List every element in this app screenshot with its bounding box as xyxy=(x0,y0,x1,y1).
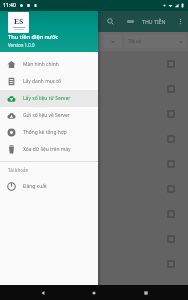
button[interactable]: Select row xyxy=(0,176,188,201)
other: Select row xyxy=(168,186,174,192)
button[interactable]: More options xyxy=(174,15,187,28)
button[interactable]: Search xyxy=(104,15,117,28)
button[interactable]: Gửi số liệu về Server xyxy=(0,107,98,124)
button[interactable]: Lấy danh mục tổ xyxy=(0,73,98,90)
button[interactable]: Filter xyxy=(124,15,137,28)
staticText: Tất cả xyxy=(128,38,141,45)
button[interactable]: Recents xyxy=(137,285,155,300)
button[interactable]: Đăng xuất xyxy=(0,178,98,195)
staticText: Lấy số liệu từ Server xyxy=(23,95,71,102)
other: Select row xyxy=(168,86,174,92)
button[interactable]: Select row xyxy=(0,226,188,251)
button[interactable]: Select row xyxy=(0,126,188,151)
staticText: Màn hình chính xyxy=(23,61,59,68)
other: Select row xyxy=(168,261,174,267)
button[interactable]: Select row xyxy=(0,251,188,276)
staticText: Đăng xuất xyxy=(23,183,47,190)
other: Select row xyxy=(168,161,174,167)
button[interactable]: Màn hình chính xyxy=(0,56,98,73)
button[interactable]: Select row xyxy=(0,101,188,126)
other: Select row xyxy=(168,136,174,142)
button[interactable]: Select row xyxy=(0,201,188,226)
staticText: Gửi số liệu về Server xyxy=(23,112,70,119)
other: Select row xyxy=(168,211,174,217)
staticText: Tài khoản xyxy=(8,167,29,173)
staticText: Version 1.0.0 xyxy=(8,42,35,47)
button[interactable]: Select row xyxy=(0,51,188,76)
staticText: Xóa dữ liệu trên máy xyxy=(23,146,71,153)
staticText: Thu tiền điện nước xyxy=(8,33,59,41)
button[interactable]: Thống kê tổng hợp xyxy=(0,124,98,141)
staticText: 11:40 xyxy=(3,2,16,9)
button[interactable]: Home xyxy=(85,285,103,300)
button[interactable]: Tất cả xyxy=(125,35,186,48)
button[interactable]: Lấy số liệu từ Server xyxy=(0,90,98,107)
other: Select row xyxy=(168,61,174,67)
staticText: Lấy danh mục tổ xyxy=(23,78,62,85)
staticText: Thống kê tổng hợp xyxy=(23,129,67,136)
staticText: ES xyxy=(14,16,24,26)
button[interactable]: Xóa dữ liệu trên máy xyxy=(0,141,98,158)
button[interactable]: Select row xyxy=(0,76,188,101)
staticText: THU TIỀN xyxy=(142,18,166,25)
button[interactable]: Select row xyxy=(0,151,188,176)
other: Select row xyxy=(168,111,174,117)
other: Select row xyxy=(168,236,174,242)
button[interactable]: Back xyxy=(34,285,52,300)
